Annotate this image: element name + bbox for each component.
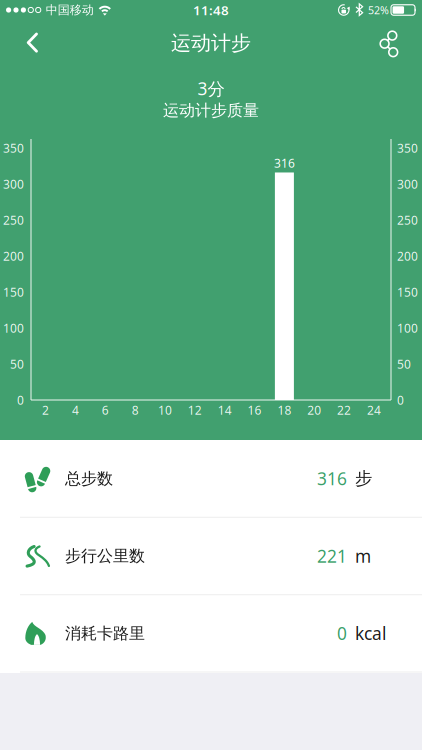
staticText: 50 bbox=[397, 356, 411, 372]
staticText: 18 bbox=[277, 402, 291, 418]
staticText: 步 bbox=[355, 468, 372, 489]
staticText: m bbox=[355, 544, 371, 567]
staticText: 100 bbox=[3, 320, 24, 336]
staticText: 0 bbox=[17, 392, 24, 408]
staticText: 3分 bbox=[197, 77, 224, 100]
staticText: 10 bbox=[158, 402, 172, 418]
staticText: 300 bbox=[3, 176, 24, 192]
staticText: 350 bbox=[397, 140, 418, 156]
staticText: 12 bbox=[188, 402, 202, 418]
staticText: 2 bbox=[42, 402, 49, 418]
staticText: 0 bbox=[397, 392, 404, 408]
staticText: 消耗卡路里 bbox=[65, 623, 145, 643]
staticText: 221 bbox=[317, 544, 347, 567]
staticText: 运动计步质量 bbox=[163, 101, 259, 120]
staticText: 22 bbox=[337, 402, 351, 418]
staticText: 20 bbox=[307, 402, 321, 418]
staticText: 4 bbox=[72, 402, 79, 418]
staticText: 50 bbox=[10, 356, 24, 372]
staticText: 100 bbox=[397, 320, 418, 336]
staticText: 350 bbox=[3, 140, 24, 156]
staticText: 52% bbox=[368, 3, 389, 17]
staticText: 运动计步 bbox=[171, 31, 251, 55]
staticText: 11:48 bbox=[193, 1, 229, 19]
button[interactable]: Share bbox=[378, 21, 422, 65]
staticText: 8 bbox=[132, 402, 139, 418]
staticText: 24 bbox=[367, 402, 381, 418]
staticText: 总步数 bbox=[65, 469, 113, 488]
staticText: 200 bbox=[397, 248, 418, 264]
button[interactable]: Back bbox=[0, 21, 38, 65]
staticText: 0 bbox=[337, 622, 347, 645]
staticText: 250 bbox=[3, 212, 24, 228]
staticText: 16 bbox=[248, 402, 262, 418]
staticText: 步行公里数 bbox=[65, 546, 145, 566]
staticText: 316 bbox=[274, 155, 295, 171]
staticText: 6 bbox=[102, 402, 109, 418]
staticText: 200 bbox=[3, 248, 24, 264]
staticText: 300 bbox=[397, 176, 418, 192]
staticText: 150 bbox=[3, 284, 24, 300]
staticText: 250 bbox=[397, 212, 418, 228]
staticText: kcal bbox=[355, 622, 386, 645]
staticText: 316 bbox=[317, 467, 347, 490]
staticText: 中国移动 bbox=[46, 3, 94, 17]
staticText: 150 bbox=[397, 284, 418, 300]
staticText: 14 bbox=[218, 402, 232, 418]
